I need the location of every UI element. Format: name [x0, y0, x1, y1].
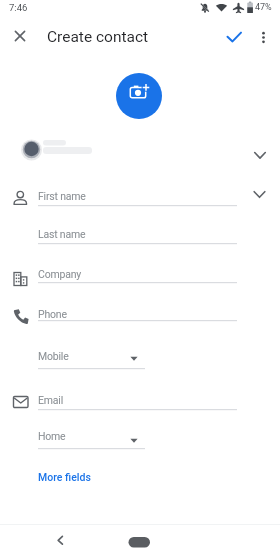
staticText: Email — [38, 394, 63, 406]
button[interactable] — [6, 22, 34, 50]
staticText: First name — [38, 190, 86, 202]
button[interactable] — [38, 390, 237, 412]
staticText: Company — [38, 268, 82, 280]
staticText: 7:46 — [9, 2, 28, 13]
staticText: 47% — [255, 2, 272, 13]
button[interactable]: More fields — [38, 471, 91, 483]
button[interactable] — [244, 142, 274, 172]
button[interactable] — [38, 224, 237, 246]
button[interactable] — [46, 526, 74, 554]
staticText: Mobile — [38, 350, 69, 362]
button[interactable] — [38, 344, 145, 370]
button[interactable] — [125, 532, 153, 552]
button[interactable] — [38, 186, 237, 208]
staticText: Last name — [38, 228, 86, 240]
button[interactable] — [38, 427, 145, 451]
button[interactable] — [38, 263, 237, 285]
staticText: Home — [38, 430, 66, 442]
staticText: Create contact — [47, 28, 149, 46]
button[interactable] — [250, 23, 278, 51]
staticText: Phone — [38, 308, 67, 320]
button[interactable] — [38, 301, 237, 323]
button[interactable] — [116, 73, 162, 119]
button[interactable] — [220, 23, 248, 51]
